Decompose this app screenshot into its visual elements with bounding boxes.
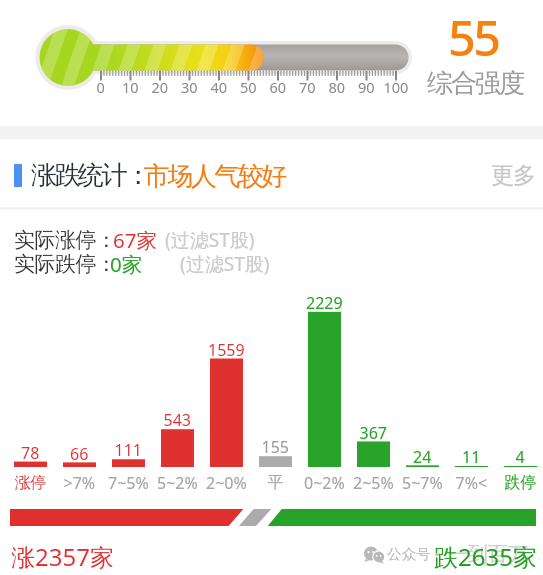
button[interactable] — [480, 152, 540, 198]
button[interactable] — [0, 146, 420, 204]
